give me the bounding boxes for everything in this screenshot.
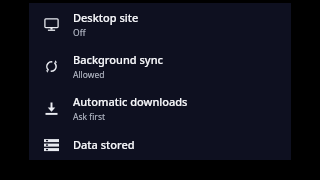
staticText: Automatic downloads: [73, 94, 188, 109]
button[interactable]: Data stored: [29, 129, 291, 160]
button[interactable]: Automatic downloads: [29, 87, 291, 129]
staticText: Ask first: [73, 111, 106, 123]
button[interactable]: Background sync: [29, 45, 291, 87]
button[interactable]: Desktop site: [29, 3, 291, 45]
staticText: Data stored: [73, 137, 135, 152]
staticText: Background sync: [73, 52, 163, 67]
staticText: Desktop site: [73, 10, 139, 25]
staticText: Allowed: [73, 69, 105, 81]
staticText: Off: [73, 27, 86, 39]
